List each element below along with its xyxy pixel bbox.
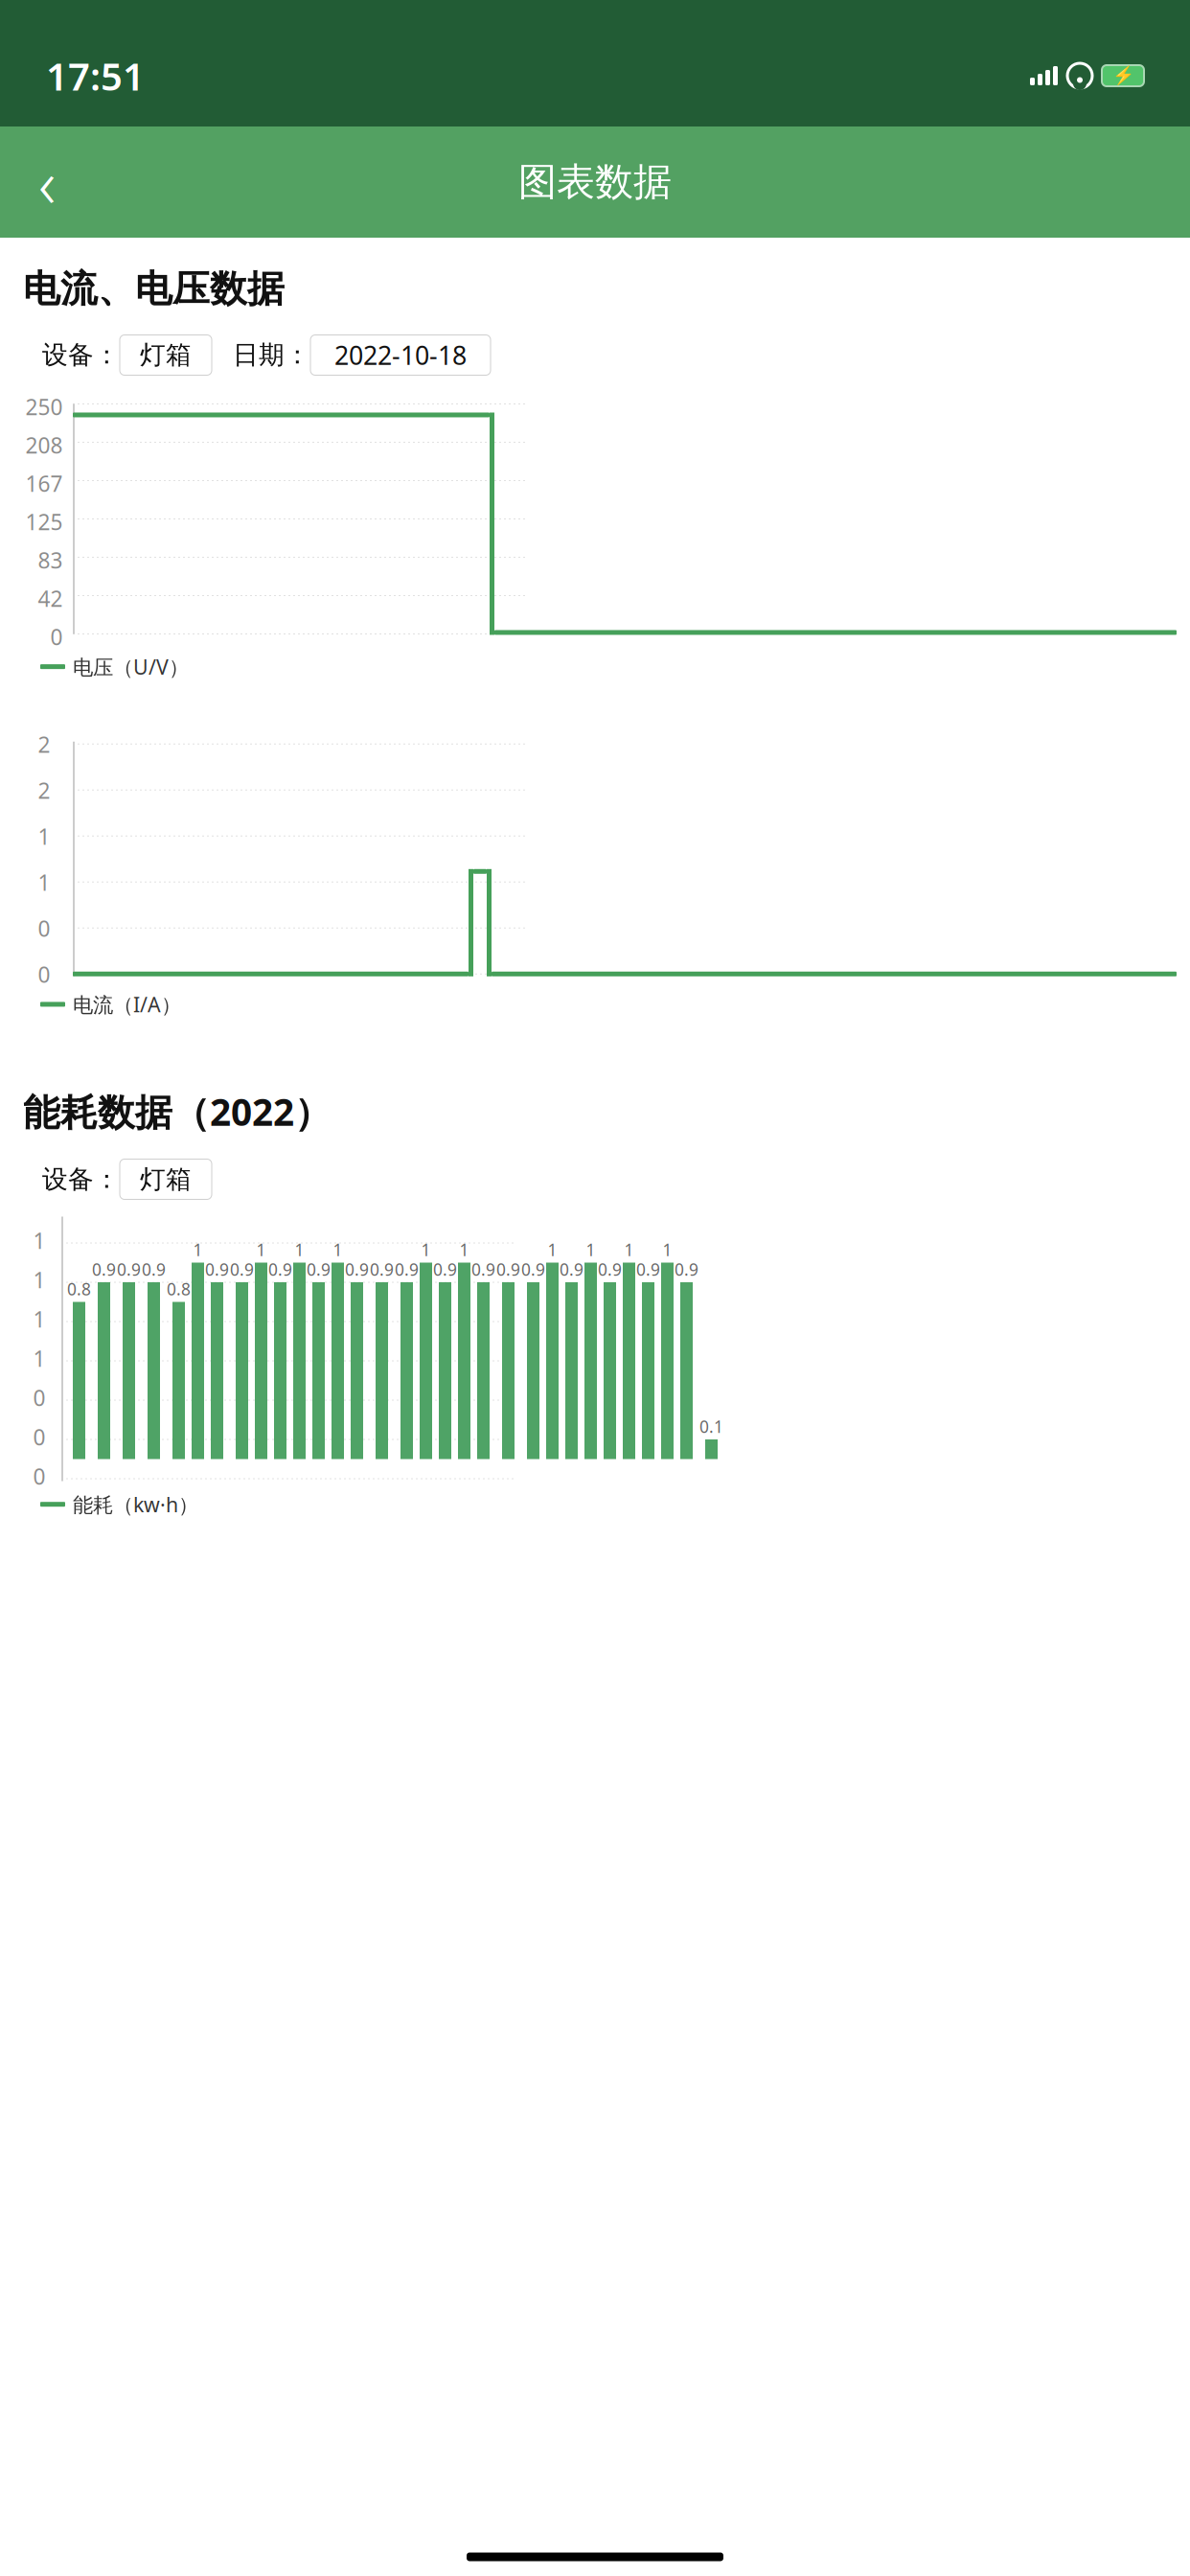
staticText: 0.9 <box>560 1258 584 1280</box>
staticText: 2 <box>38 730 50 759</box>
staticText: 1 <box>33 1265 46 1294</box>
staticText: ‹ <box>38 138 56 226</box>
staticText: 42 <box>38 584 63 613</box>
staticText: 1 <box>624 1239 634 1261</box>
button[interactable]: 2022-10-18 <box>310 335 491 375</box>
staticText: 图表数据 <box>518 159 672 206</box>
staticText: 电压（U/V） <box>73 653 189 680</box>
staticText: 0 <box>38 960 50 989</box>
staticText: 2 <box>38 776 50 805</box>
staticText: 167 <box>25 469 63 498</box>
button[interactable]: 灯箱 <box>120 1159 212 1199</box>
staticText: ⚡ <box>1112 65 1134 86</box>
staticText: 0 <box>33 1383 46 1412</box>
button[interactable]: 灯箱 <box>120 335 212 375</box>
staticText: 0.9 <box>370 1258 394 1280</box>
staticText: 1 <box>38 822 50 851</box>
staticText: 0 <box>33 1423 46 1451</box>
staticText: 208 <box>25 431 63 460</box>
staticText: 0.9 <box>230 1258 254 1280</box>
staticText: 125 <box>25 507 63 536</box>
staticText: 0.8 <box>167 1278 191 1300</box>
button[interactable]: Back <box>13 149 80 216</box>
staticText: 0.9 <box>92 1258 116 1280</box>
staticText: 0 <box>50 622 63 651</box>
staticText: 83 <box>38 546 63 575</box>
staticText: 0.9 <box>521 1258 545 1280</box>
staticText: 0.9 <box>142 1258 166 1280</box>
staticText: 灯箱 <box>140 339 192 371</box>
staticText: 灯箱 <box>140 1164 192 1195</box>
staticText: 1 <box>333 1239 343 1261</box>
staticText: 1 <box>33 1344 46 1373</box>
staticText: 设备： <box>42 1164 120 1195</box>
staticText: 1 <box>193 1239 203 1261</box>
staticText: 1 <box>663 1239 672 1261</box>
staticText: 电流（I/A） <box>73 991 181 1018</box>
staticText: 0.8 <box>67 1278 91 1300</box>
staticText: 0.9 <box>307 1258 331 1280</box>
staticText: 0.9 <box>345 1258 369 1280</box>
staticText: 1 <box>586 1239 595 1261</box>
staticText: 1 <box>295 1239 304 1261</box>
staticText: 2022-10-18 <box>334 338 467 372</box>
staticText: 0 <box>33 1462 46 1491</box>
staticText: 0.9 <box>598 1258 622 1280</box>
staticText: 0.9 <box>268 1258 292 1280</box>
staticText: 1 <box>548 1239 557 1261</box>
staticText: 17:51 <box>46 50 145 101</box>
staticText: 0.9 <box>496 1258 520 1280</box>
staticText: 0.9 <box>395 1258 419 1280</box>
staticText: 1 <box>33 1305 46 1334</box>
staticText: 0.9 <box>433 1258 457 1280</box>
staticText: 250 <box>25 392 63 421</box>
staticText: 0.9 <box>675 1258 698 1280</box>
staticText: 1 <box>256 1239 266 1261</box>
staticText: 0.9 <box>471 1258 495 1280</box>
staticText: 设备： <box>42 339 120 371</box>
staticText: 电流、电压数据 <box>23 266 285 312</box>
staticText: 0.9 <box>117 1258 141 1280</box>
staticText: 1 <box>459 1239 469 1261</box>
staticText: 1 <box>38 868 50 897</box>
staticText: 1 <box>421 1239 431 1261</box>
staticText: 能耗数据（2022） <box>23 1087 332 1136</box>
staticText: 日期： <box>233 339 310 371</box>
staticText: 能耗（kw·h） <box>73 1491 198 1518</box>
staticText: 0.9 <box>636 1258 660 1280</box>
staticText: 0.9 <box>205 1258 229 1280</box>
staticText: 0 <box>38 914 50 943</box>
staticText: 0.1 <box>699 1415 723 1437</box>
staticText: 1 <box>33 1226 46 1255</box>
